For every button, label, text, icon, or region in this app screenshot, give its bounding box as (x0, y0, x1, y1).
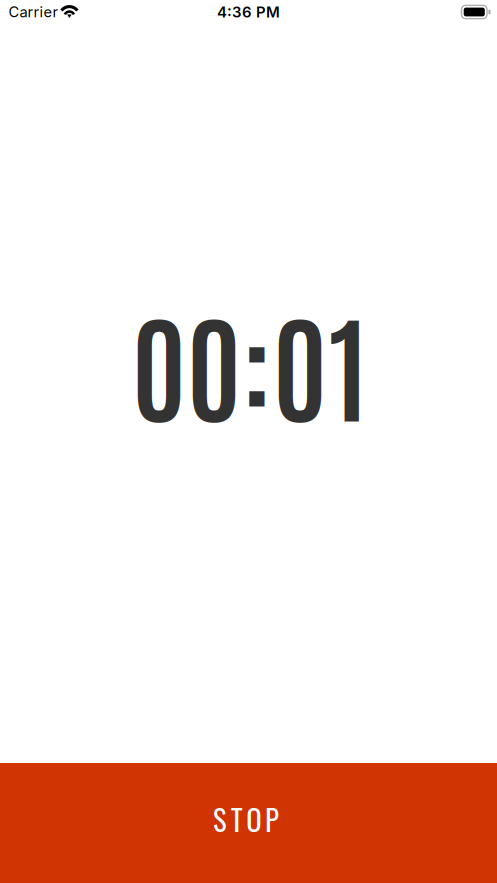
button[interactable]: STOP (0, 763, 497, 883)
staticText: STOP (213, 798, 279, 840)
staticText: 00:01 (131, 286, 369, 438)
staticText: Carrier (9, 3, 59, 21)
staticText: 4:36 PM (217, 3, 280, 21)
